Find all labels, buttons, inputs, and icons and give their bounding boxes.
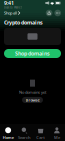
button[interactable]: More options xyxy=(54,10,61,16)
button[interactable]: Search xyxy=(16,127,32,140)
button[interactable]: Shop all xyxy=(4,10,20,16)
staticText: 9:41 xyxy=(4,0,14,7)
staticText: Search xyxy=(18,135,31,140)
button[interactable]: Cart xyxy=(32,127,49,140)
staticText: Crypto domains xyxy=(4,19,43,26)
staticText: Browse xyxy=(25,97,39,103)
staticText: Shop all xyxy=(4,10,17,16)
staticText: Shop domains xyxy=(15,50,50,57)
button[interactable]: Shop domains xyxy=(4,49,61,58)
staticText: Me xyxy=(54,135,60,140)
button[interactable]: Me xyxy=(49,127,65,140)
staticText: Home xyxy=(3,135,14,140)
button[interactable]: Browse xyxy=(22,97,43,103)
button[interactable]: Share xyxy=(46,10,52,16)
staticText: No domains yet xyxy=(19,89,46,95)
staticText: Back to Wallet xyxy=(4,6,22,9)
button[interactable]: Home xyxy=(0,127,16,140)
staticText: Cart xyxy=(36,135,45,140)
